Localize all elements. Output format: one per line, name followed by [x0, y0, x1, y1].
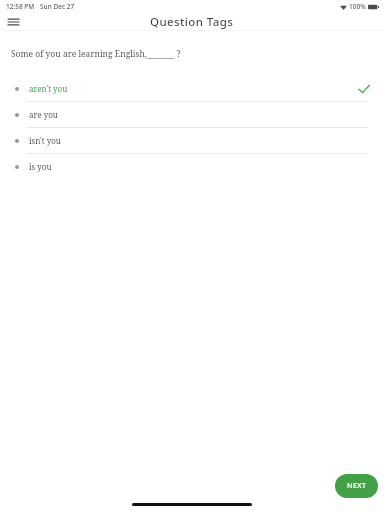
button[interactable]: are you — [0, 102, 384, 127]
staticText: Some of you are learning English,_______… — [11, 48, 181, 60]
staticText: are you — [29, 109, 58, 120]
button[interactable]: isn't you — [0, 128, 384, 153]
staticText: NEXT — [347, 481, 367, 491]
button[interactable]: NEXT — [335, 474, 378, 498]
staticText: is you — [29, 161, 52, 172]
staticText: 12:58 PM — [6, 2, 35, 11]
staticText: Question Tags — [150, 14, 234, 30]
button[interactable]: Open navigation menu — [2, 13, 24, 30]
other: Correct answer — [358, 83, 370, 95]
staticText: Sun Dec 27 — [40, 2, 75, 11]
button[interactable]: is you — [0, 154, 384, 179]
staticText: 100% — [349, 2, 366, 11]
staticText: aren't you — [29, 83, 68, 94]
button[interactable]: aren't you — [0, 76, 384, 101]
staticText: isn't you — [29, 135, 61, 146]
